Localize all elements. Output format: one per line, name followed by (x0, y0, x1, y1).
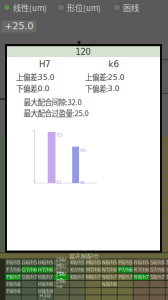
staticText: 下偏差: (85, 83, 108, 94)
staticText: 120 (75, 47, 90, 57)
staticText: P6/h5 (118, 259, 132, 266)
staticText: S6/h5 (150, 259, 164, 266)
button[interactable]: 形位(um) (57, 0, 109, 15)
staticText: K8/h7 (70, 274, 84, 280)
staticText: 形位(um) (67, 2, 101, 13)
staticText: R7/h6 (134, 267, 149, 273)
button[interactable]: Stepper (0, 0, 168, 300)
staticText: K6/h5 (70, 259, 84, 266)
staticText: JS7/h6 (56, 264, 66, 276)
staticText: H8/h8 (38, 281, 53, 287)
staticText: M6/h5 (86, 259, 101, 266)
staticText: 3.0 (108, 84, 120, 93)
button[interactable]: 图线 (113, 0, 163, 15)
staticText: T8/h7 (166, 274, 168, 280)
staticText: F8/h8 (6, 281, 20, 287)
staticText: S7/h6 (150, 267, 164, 273)
staticText: F8/h7 (6, 274, 20, 280)
staticText: H10/h9 (39, 292, 51, 300)
staticText: N7/h6 (102, 267, 117, 273)
staticText: 下偏差: (16, 83, 39, 94)
staticText: 图线 (123, 2, 139, 13)
staticText: N6/h5 (102, 259, 117, 266)
staticText: P7/h6 (118, 267, 132, 273)
staticText: H7 (39, 59, 50, 69)
staticText: T6/h5 (166, 259, 168, 266)
staticText: EI (57, 179, 61, 185)
staticText: JS8/h8 (56, 278, 66, 290)
staticText: JS6/h5 (56, 256, 66, 268)
staticText: 0.0 (38, 84, 50, 93)
staticText: +25.0 (4, 21, 33, 31)
staticText: R6/h5 (134, 259, 149, 266)
staticText: H6/h5 (38, 259, 53, 266)
staticText: S8/h7 (150, 274, 164, 280)
button[interactable]: 线性(um) (3, 0, 55, 15)
staticText: F7/h6 (6, 267, 20, 273)
staticText: ei (80, 179, 84, 185)
staticText: 35.0 (38, 73, 55, 81)
staticText: F9/h9 (6, 288, 20, 294)
staticText: K7/h6 (70, 267, 84, 273)
staticText: H9/h9 (38, 288, 53, 294)
staticText: 25.0 (108, 73, 125, 81)
staticText: N8/h8 (102, 281, 117, 287)
staticText: 最大配合过盈量:25.0 (23, 108, 88, 118)
staticText: 最大配合间隙:32.0 (23, 97, 81, 107)
staticText: 线性(um) (13, 2, 47, 13)
staticText: 0 (33, 178, 36, 184)
staticText: P8/h7 (118, 274, 132, 280)
staticText: F6/h5 (6, 259, 20, 266)
staticText: G8/h7 (22, 274, 37, 280)
staticText: M7/h6 (86, 267, 101, 273)
staticText: 上偏差: (16, 72, 39, 82)
staticText: H8/h7 (38, 274, 53, 280)
staticText: N8/h7 (102, 274, 117, 280)
staticText: ES (57, 132, 63, 138)
staticText: 上偏差: (85, 72, 108, 82)
staticText: R8/h7 (134, 274, 149, 280)
staticText: JS8/h7 (56, 271, 66, 283)
staticText: G6/h5 (22, 259, 37, 266)
staticText: G7/h6 (22, 267, 37, 273)
staticText: M8/h7 (86, 274, 101, 280)
staticText: k6 (108, 59, 118, 69)
staticText: 基孔制配合 (69, 252, 99, 260)
staticText: T7/h6 (166, 267, 168, 273)
staticText: H7/h6 (38, 267, 53, 273)
staticText: es (80, 147, 86, 153)
